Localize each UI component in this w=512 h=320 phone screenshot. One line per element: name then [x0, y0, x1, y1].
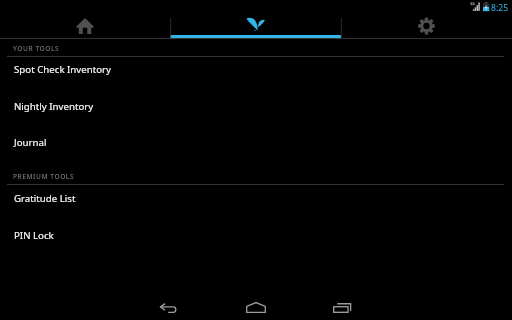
button[interactable]: Gratitude List — [0, 185, 512, 222]
staticText: YOUR TOOLS — [13, 44, 60, 53]
button[interactable]: Home — [0, 14, 170, 38]
staticText: PIN Lock — [14, 229, 54, 242]
button[interactable]: Home — [212, 286, 299, 320]
staticText: Journal — [14, 136, 47, 149]
staticText: Nightly Inventory — [14, 100, 94, 113]
staticText: PREMIUM TOOLS — [13, 172, 75, 181]
staticText: Gratitude List — [14, 192, 76, 205]
button[interactable]: PIN Lock — [0, 222, 512, 258]
button[interactable]: Spot Check Inventory — [0, 57, 512, 94]
button[interactable]: Settings — [341, 14, 512, 38]
staticText: Spot Check Inventory — [14, 63, 112, 76]
button[interactable]: Tools — [170, 14, 341, 38]
button[interactable]: Back — [125, 286, 212, 320]
staticText: 8:25 — [491, 2, 509, 14]
button[interactable]: Recent apps — [299, 286, 386, 320]
button[interactable]: Nightly Inventory — [0, 94, 512, 130]
button[interactable]: Journal — [0, 130, 512, 162]
